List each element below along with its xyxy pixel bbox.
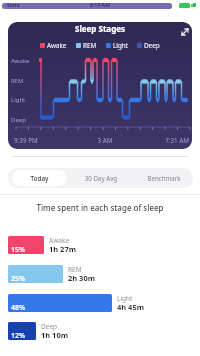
button[interactable]: 48% — [8, 294, 112, 312]
staticText: 30 Day Avg — [71, 174, 131, 182]
staticText: 48% — [11, 303, 26, 312]
staticText: Deep — [41, 322, 58, 331]
staticText: 8:13 AM — [80, 1, 120, 8]
staticText: Sono — [7, 1, 20, 8]
staticText: 15% — [11, 245, 26, 254]
staticText: Light — [11, 96, 26, 104]
staticText: REM — [11, 77, 24, 85]
staticText: 12% — [11, 331, 26, 340]
staticText: Benchmark — [134, 174, 193, 182]
button[interactable]: Benchmark — [134, 168, 193, 187]
staticText: 2h 30m — [68, 273, 96, 283]
staticText: Today — [12, 174, 67, 182]
staticText: Awake — [49, 236, 70, 245]
button[interactable] — [179, 26, 191, 38]
staticText: REM — [68, 265, 82, 274]
staticText: Time spent in each stage of sleep — [0, 202, 200, 213]
button[interactable]: 12% — [8, 322, 36, 340]
staticText: Deep — [11, 116, 26, 124]
staticText: 3 AM — [95, 136, 115, 145]
staticText: 4h 45m — [117, 302, 145, 312]
staticText: Light — [113, 41, 128, 50]
staticText: 1h 10m — [41, 330, 69, 340]
button[interactable]: Today — [12, 170, 67, 186]
staticText: Awake — [47, 41, 67, 50]
staticText: Light — [117, 294, 133, 303]
staticText: REM — [83, 41, 97, 50]
button[interactable]: 30 Day Avg — [71, 168, 131, 187]
staticText: 25% — [11, 274, 26, 283]
staticText: 1h 27m — [49, 244, 77, 254]
staticText: 9:39 PM — [14, 136, 38, 145]
staticText: Deep — [144, 41, 160, 50]
staticText: Awake — [11, 57, 30, 65]
staticText: 7:31 AM — [149, 136, 189, 145]
staticText: Sleep Stages — [8, 23, 192, 34]
button[interactable]: 15% — [8, 236, 44, 254]
button[interactable]: 25% — [8, 265, 63, 283]
